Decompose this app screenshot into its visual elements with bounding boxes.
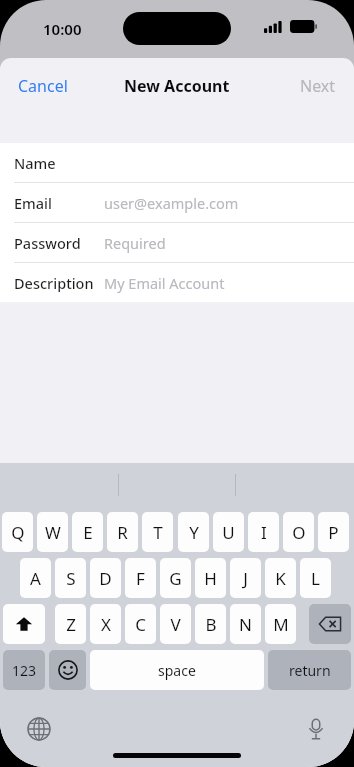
staticText: H — [204, 567, 217, 590]
staticText: Name — [14, 153, 56, 173]
button[interactable]: N — [230, 604, 261, 644]
staticText: Cancel — [18, 75, 68, 97]
button[interactable]: B — [195, 604, 226, 644]
button[interactable]: H — [195, 558, 226, 598]
staticText: 123 — [12, 661, 37, 680]
button[interactable]: Cancel — [0, 67, 86, 105]
button[interactable]: Y — [178, 512, 209, 552]
button[interactable]: S — [55, 558, 86, 598]
button[interactable]: K — [265, 558, 296, 598]
staticText: Required — [104, 233, 166, 253]
button[interactable]: Backspace — [309, 604, 351, 644]
staticText: I — [261, 521, 267, 544]
staticText: O — [292, 521, 306, 544]
staticText: Password — [14, 233, 81, 253]
button[interactable]: P — [318, 512, 349, 552]
staticText: space — [158, 661, 196, 680]
staticText: K — [275, 567, 286, 590]
staticText: F — [136, 567, 145, 590]
button[interactable]: Shift — [3, 604, 45, 644]
button[interactable]: Q — [2, 512, 33, 552]
button[interactable]: L — [300, 558, 331, 598]
button[interactable]: Emoji keyboard — [49, 650, 86, 690]
staticText: M — [273, 613, 289, 636]
staticText: D — [99, 567, 112, 590]
staticText: B — [205, 613, 217, 636]
staticText: Description — [14, 273, 94, 293]
staticText: Email — [14, 193, 52, 213]
button[interactable]: E — [72, 512, 103, 552]
staticText: P — [328, 521, 339, 544]
button[interactable]: Dictate — [300, 713, 332, 745]
staticText: return — [289, 661, 331, 680]
staticText: G — [169, 567, 182, 590]
button[interactable]: Name — [0, 143, 354, 183]
button[interactable]: 123 — [3, 650, 45, 690]
button[interactable]: space — [90, 650, 264, 690]
button[interactable]: I — [248, 512, 279, 552]
staticText: L — [311, 567, 320, 590]
button[interactable]: J — [230, 558, 261, 598]
staticText: Q — [11, 521, 25, 544]
staticText: X — [101, 613, 111, 636]
staticText: T — [153, 521, 163, 544]
staticText: 10:00 — [43, 19, 82, 39]
button[interactable]: W — [37, 512, 68, 552]
staticText: A — [30, 567, 41, 590]
staticText: J — [243, 567, 248, 590]
staticText: S — [66, 567, 76, 590]
button[interactable]: G — [160, 558, 191, 598]
button[interactable]: A — [20, 558, 51, 598]
button[interactable]: O — [283, 512, 314, 552]
button[interactable]: T — [142, 512, 173, 552]
button[interactable]: R — [107, 512, 138, 552]
button[interactable]: F — [125, 558, 156, 598]
button[interactable]: Z — [55, 604, 86, 644]
staticText: U — [222, 521, 235, 544]
staticText: user@example.com — [104, 193, 239, 213]
button[interactable]: Switch keyboard language — [23, 713, 55, 745]
button[interactable]: Password — [0, 223, 354, 263]
button[interactable]: V — [160, 604, 191, 644]
button[interactable]: Description — [0, 263, 354, 302]
button[interactable]: X — [90, 604, 121, 644]
staticText: My Email Account — [104, 273, 225, 293]
button[interactable]: U — [213, 512, 244, 552]
button[interactable]: C — [125, 604, 156, 644]
button[interactable]: M — [265, 604, 296, 644]
button[interactable]: return — [268, 650, 351, 690]
staticText: Next — [300, 75, 336, 97]
staticText: Z — [66, 613, 76, 636]
button[interactable]: Next — [282, 67, 354, 105]
staticText: Y — [189, 521, 199, 544]
staticText: E — [83, 521, 93, 544]
button[interactable]: Email — [0, 183, 354, 223]
staticText: C — [135, 613, 146, 636]
staticText: N — [239, 613, 252, 636]
staticText: R — [117, 521, 128, 544]
staticText: New Account — [124, 75, 230, 97]
staticText: V — [170, 613, 181, 636]
staticText: W — [45, 521, 61, 544]
button[interactable]: D — [90, 558, 121, 598]
